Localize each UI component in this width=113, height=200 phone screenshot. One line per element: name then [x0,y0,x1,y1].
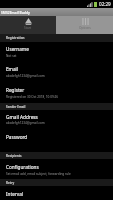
staticText: Username [6,46,29,52]
staticText: Interval [6,191,23,197]
staticText: Options [79,26,91,30]
staticText: Start [24,26,32,30]
staticText: Set email add, email subject, forwarding… [6,172,71,176]
staticText: Gmail Address [6,114,38,120]
button[interactable]: Configurations [0,164,113,177]
staticText: Sender Email [6,105,26,109]
staticText: Retry [6,181,15,185]
button[interactable]: Register [0,87,113,100]
button[interactable]: Gmail Address [0,114,113,127]
button[interactable]: Options tab [56,16,113,34]
staticText: SMS2Email Buddy [1,10,30,14]
staticText: Registered on 30 Oct 2018, 10:09:26 [6,95,59,99]
staticText: Recipients [6,154,22,158]
staticText: Register [6,87,25,93]
staticText: Not set [6,54,17,58]
staticText: abcdefgh1234@gmail.com [6,121,45,125]
staticText: abcdefgh1234@gmail.com [6,74,45,78]
staticText: Password [6,134,28,140]
button[interactable]: Interval [0,191,113,200]
staticText: Registration [6,36,25,40]
staticText: Email [6,66,19,72]
staticText: Configurations [6,164,39,170]
button[interactable]: Username [0,46,113,59]
staticText: 02:29 [99,1,111,7]
button[interactable]: Start tab [0,16,56,34]
button[interactable]: Email [0,66,113,79]
button[interactable]: Password [0,134,113,144]
